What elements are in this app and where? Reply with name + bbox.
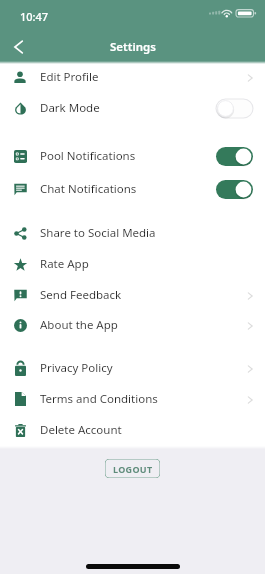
button[interactable]: Privacy Policy xyxy=(0,353,265,384)
staticText: Terms and Conditions xyxy=(40,391,158,407)
button[interactable]: Terms and Conditions xyxy=(0,384,265,415)
button[interactable]: Chat Notifications xyxy=(0,174,265,205)
button[interactable] xyxy=(216,99,253,118)
staticText: Send Feedback xyxy=(40,287,122,303)
button[interactable] xyxy=(216,147,253,166)
button[interactable] xyxy=(216,180,253,199)
staticText: Share to Social Media xyxy=(40,225,156,241)
staticText: Privacy Policy xyxy=(40,360,113,376)
button[interactable]: Edit Profile xyxy=(0,62,265,93)
staticText: 10:47 xyxy=(20,9,49,24)
button[interactable]: Rate App xyxy=(0,249,265,280)
button[interactable]: Send Feedback xyxy=(0,280,265,311)
button[interactable]: Dark Mode xyxy=(0,93,265,124)
staticText: About the App xyxy=(40,317,118,333)
button[interactable]: Pool Notifications xyxy=(0,141,265,172)
staticText: Edit Profile xyxy=(40,69,99,85)
button[interactable]: Share to Social Media xyxy=(0,218,265,249)
staticText: Rate App xyxy=(40,256,89,272)
staticText: Delete Account xyxy=(40,422,122,438)
staticText: Pool Notifications xyxy=(40,148,136,164)
button[interactable]: About the App xyxy=(0,310,265,341)
staticText: LOGOUT xyxy=(113,463,153,475)
staticText: Chat Notifications xyxy=(40,181,137,197)
staticText: Settings xyxy=(110,39,156,55)
button[interactable]: Back xyxy=(3,32,33,62)
button[interactable]: Delete Account xyxy=(0,415,265,446)
staticText: Dark Mode xyxy=(40,100,100,116)
button[interactable]: LOGOUT xyxy=(105,459,160,478)
